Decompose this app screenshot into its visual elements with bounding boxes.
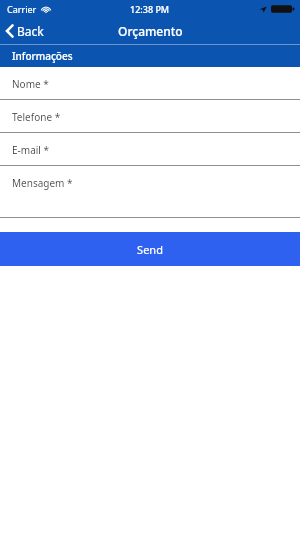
button[interactable]: Back bbox=[0, 20, 52, 42]
button[interactable]: Telefone * bbox=[0, 100, 300, 133]
button[interactable]: E-mail * bbox=[0, 133, 300, 166]
staticText: E-mail * bbox=[12, 143, 50, 157]
staticText: Telefone * bbox=[12, 110, 61, 124]
button[interactable]: Informações bbox=[0, 45, 300, 67]
staticText: Nome * bbox=[12, 77, 49, 91]
staticText: Carrier bbox=[7, 3, 37, 15]
staticText: 12:38 PM bbox=[130, 3, 170, 15]
button[interactable]: Send bbox=[0, 232, 300, 266]
button[interactable]: Mensagem * bbox=[0, 166, 300, 218]
button[interactable]: Nome * bbox=[0, 67, 300, 100]
staticText: Send bbox=[137, 242, 163, 257]
staticText: Mensagem * bbox=[12, 176, 73, 190]
staticText: Informações bbox=[12, 49, 73, 63]
staticText: Back bbox=[17, 23, 44, 39]
staticText: Orçamento bbox=[118, 23, 183, 39]
